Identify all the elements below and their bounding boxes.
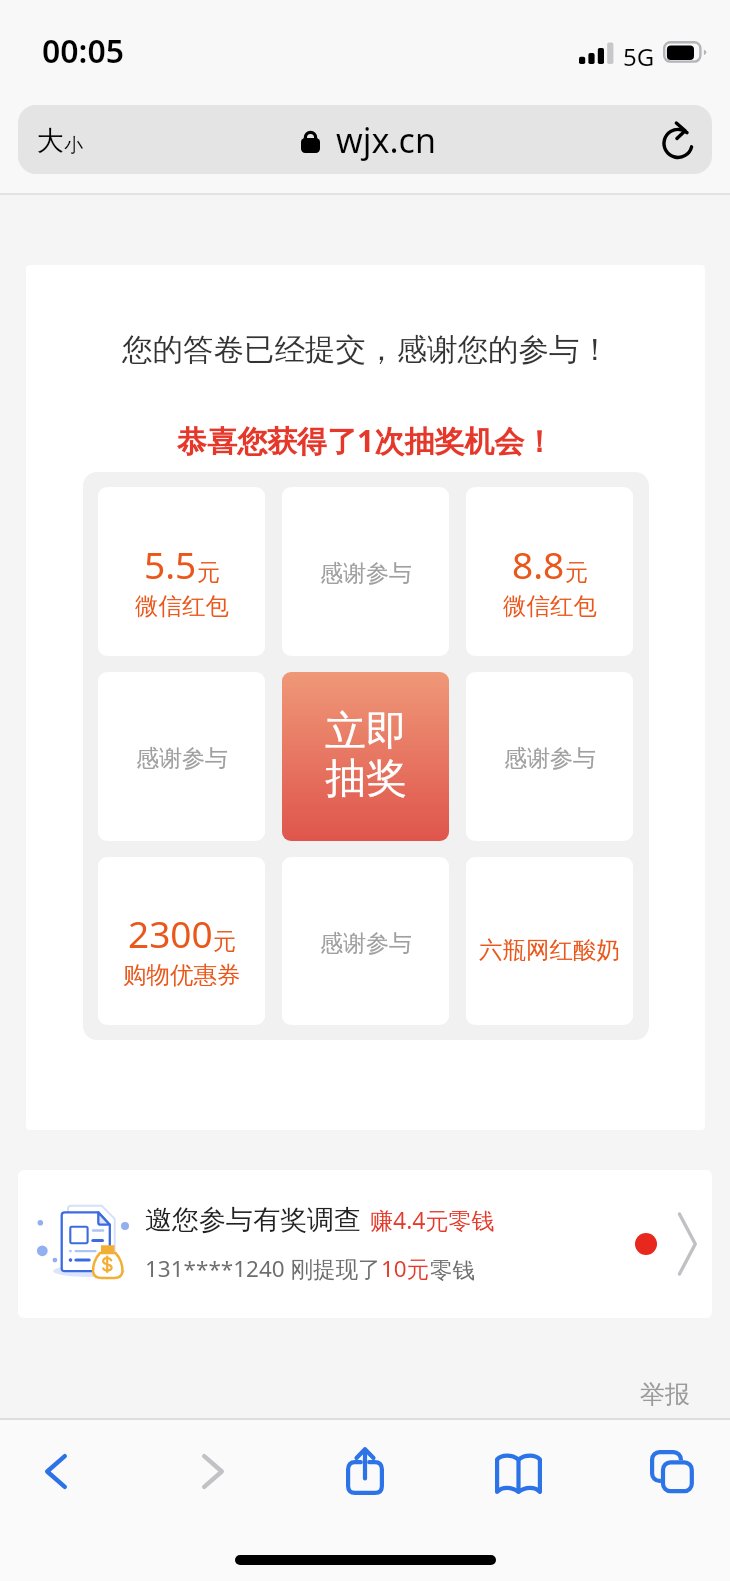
staticText: 小 (64, 134, 83, 158)
button[interactable]: 感谢参与 (282, 857, 449, 1025)
button[interactable]: Forward (168, 1426, 258, 1516)
staticText: 您的答卷已经提交，感谢您的参与！ (122, 331, 610, 369)
button[interactable]: 大 (18, 105, 712, 174)
button[interactable]: 感谢参与 (98, 672, 265, 841)
staticText: 举报 (640, 1379, 690, 1410)
staticText: 邀您参与有奖调查 (145, 1203, 361, 1237)
button[interactable]: 5.5 (98, 487, 265, 656)
button[interactable]: 六瓶网红酸奶 (466, 857, 633, 1025)
staticText: 购物优惠券 (123, 960, 241, 990)
button[interactable]: 立即 抽奖 (282, 672, 449, 841)
button[interactable]: 8.8 (466, 487, 633, 656)
button[interactable]: 感谢参与 (282, 487, 449, 656)
other: Open (678, 1214, 696, 1274)
staticText: 2300 (128, 908, 213, 958)
staticText: 感谢参与 (136, 744, 228, 773)
button[interactable]: 2300 (98, 857, 265, 1025)
staticText: 00:05 (42, 29, 125, 73)
staticText: 8.8 (512, 539, 565, 589)
staticText: 元 (213, 927, 236, 956)
button[interactable]: 感谢参与 (466, 672, 633, 841)
button[interactable]: Bookmarks (473, 1429, 563, 1519)
staticText: 10元 (381, 1253, 430, 1284)
staticText: 恭喜您获得了1次抽奖机会！ (177, 420, 555, 461)
staticText: 5G (623, 40, 655, 73)
staticText: 感谢参与 (320, 559, 412, 588)
button[interactable]: Back (11, 1426, 101, 1516)
button[interactable]: 邀您参与有奖调查 (18, 1170, 712, 1318)
button[interactable]: 举报 (640, 1379, 690, 1410)
staticText: 微信红包 (135, 591, 229, 621)
staticText: 131****1240 刚提现了 (145, 1253, 381, 1284)
staticText: 元 (565, 558, 588, 587)
button[interactable]: Share (320, 1426, 410, 1516)
staticText: 零钱 (430, 1256, 475, 1284)
staticText: 六瓶网红酸奶 (479, 935, 620, 965)
button[interactable]: Tabs (627, 1426, 717, 1516)
staticText: 大 (37, 124, 64, 158)
staticText: 感谢参与 (504, 744, 596, 773)
staticText: wjx.cn (336, 117, 436, 163)
staticText: 元 (197, 558, 220, 587)
button[interactable]: Reload (653, 115, 703, 165)
staticText: 立即 抽奖 (325, 706, 407, 804)
staticText: 赚4.4元零钱 (370, 1204, 495, 1235)
staticText: 5.5 (144, 539, 197, 589)
staticText: 感谢参与 (320, 929, 412, 958)
staticText: 微信红包 (503, 591, 597, 621)
